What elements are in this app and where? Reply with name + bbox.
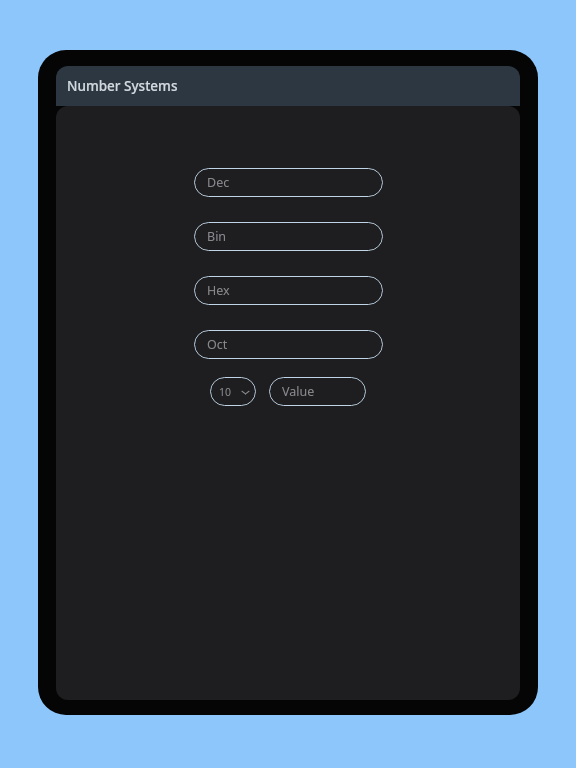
button[interactable]: Value [269, 377, 366, 406]
button[interactable]: Dec [194, 168, 383, 197]
staticText: Value [282, 383, 315, 400]
button[interactable]: Base selector, 10 [210, 377, 256, 406]
staticText: Bin [207, 228, 227, 245]
button[interactable]: Bin [194, 222, 383, 251]
staticText: Dec [207, 174, 230, 191]
staticText: Hex [207, 282, 230, 299]
button[interactable]: Hex [194, 276, 383, 305]
staticText: Number Systems [67, 77, 178, 95]
button[interactable]: Oct [194, 330, 383, 359]
staticText: Oct [207, 336, 228, 353]
staticText: 10 [219, 385, 232, 399]
